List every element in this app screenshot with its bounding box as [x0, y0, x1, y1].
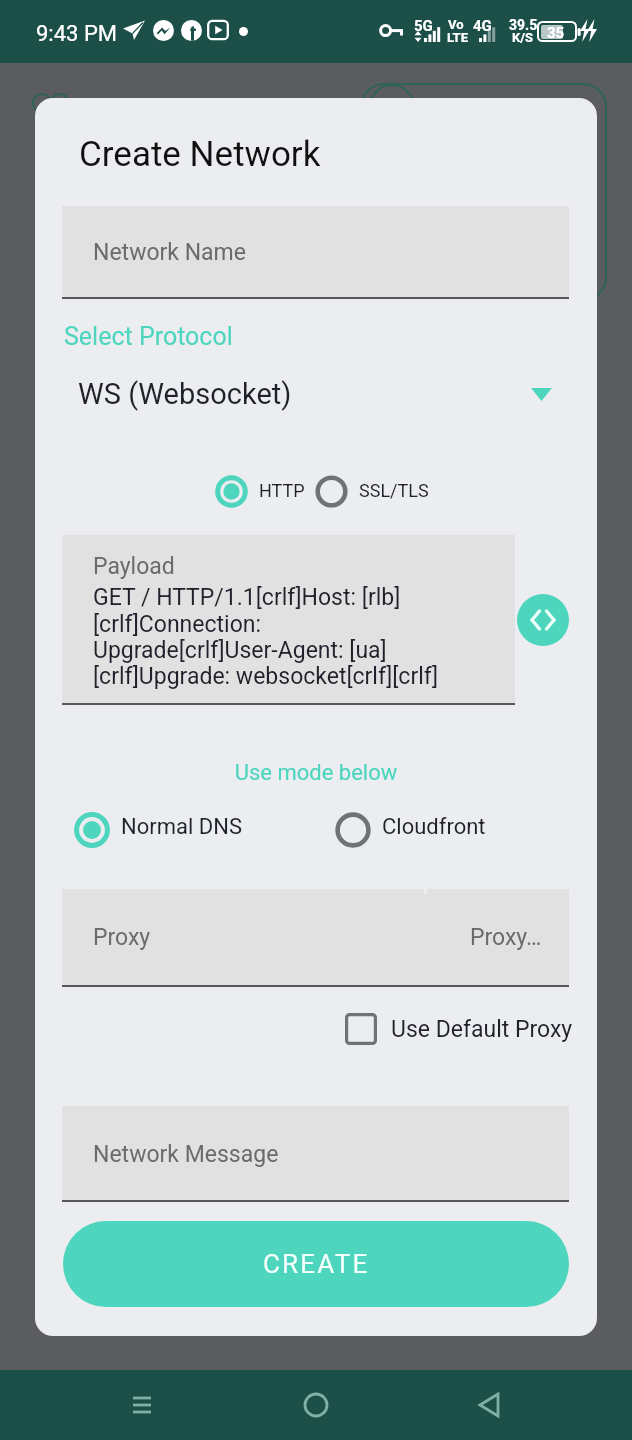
button[interactable]: HTTP: [210, 466, 305, 514]
staticText: Select Protocol: [64, 322, 233, 351]
button[interactable]: Proxy: [62, 889, 424, 985]
staticText: GET / HTTP/1.1[crlf]Host: [rlb][crlf]Con…: [93, 584, 443, 690]
button[interactable]: Edit payload code: [517, 594, 569, 646]
staticText: WS (Websocket): [78, 377, 292, 411]
button[interactable]: Use Default Proxy: [339, 1006, 579, 1052]
staticText: LTE: [447, 30, 468, 45]
staticText: Use Default Proxy: [391, 1016, 573, 1043]
staticText: 4G: [473, 17, 492, 35]
staticText: Cloudfront: [382, 814, 486, 840]
button[interactable]: Back: [458, 1373, 522, 1437]
staticText: 5G: [414, 17, 433, 35]
staticText: Use mode below: [35, 760, 597, 786]
button[interactable]: Normal DNS: [69, 803, 242, 851]
button[interactable]: WS (Websocket): [62, 370, 569, 418]
staticText: Network Message: [93, 1141, 279, 1168]
button[interactable]: SSL/TLS: [310, 466, 429, 514]
button[interactable]: Home: [284, 1373, 348, 1437]
staticText: Network Name: [93, 239, 246, 266]
staticText: Proxy…: [470, 924, 542, 951]
button[interactable]: Proxy…: [427, 889, 569, 985]
staticText: 35: [547, 24, 565, 42]
button[interactable]: Recent apps: [110, 1373, 174, 1437]
staticText: Proxy: [93, 924, 151, 951]
staticText: 9:43 PM: [36, 21, 117, 47]
button[interactable]: Cloudfront: [330, 803, 486, 851]
staticText: CREATE: [263, 1249, 370, 1279]
button[interactable]: CREATE: [63, 1221, 569, 1307]
button[interactable]: Network Name: [62, 206, 569, 299]
staticText: Normal DNS: [121, 814, 242, 840]
staticText: 39.5: [509, 17, 538, 33]
staticText: Payload: [93, 553, 175, 580]
staticText: Create Network: [79, 134, 321, 175]
staticText: Vo: [448, 17, 464, 32]
staticText: HTTP: [259, 480, 305, 501]
staticText: SSL/TLS: [359, 480, 429, 501]
button[interactable]: Network Message: [62, 1106, 569, 1202]
staticText: K/S: [512, 30, 534, 45]
